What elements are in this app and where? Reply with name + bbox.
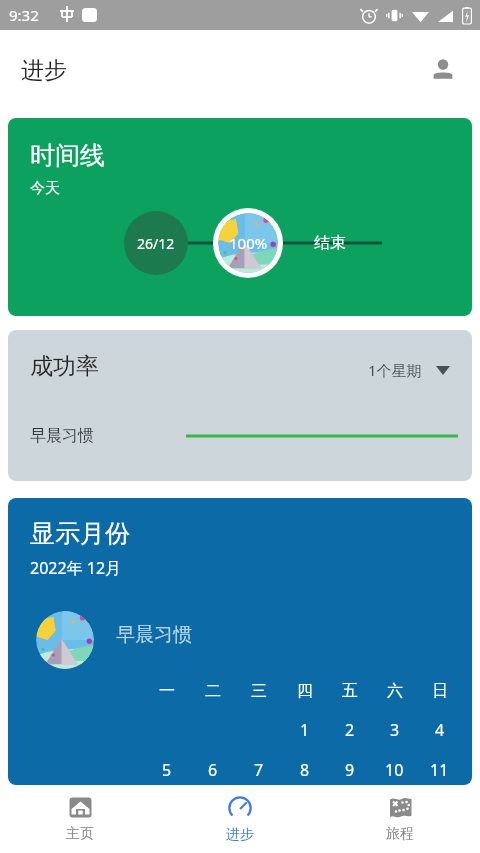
staticText: 三 [251,681,267,701]
staticText: 100% [229,233,268,253]
staticText: 早晨习惯 [116,623,192,647]
button[interactable]: 显示月份 [8,498,472,785]
staticText: 主页 [66,825,94,843]
staticText: 7 [254,759,264,781]
staticText: 6 [208,759,218,781]
staticText: 9 [345,759,355,781]
button[interactable]: 1个星期 [362,356,456,384]
staticText: 四 [297,681,313,701]
staticText: 六 [387,681,403,701]
staticText: 4 [435,719,445,741]
staticText: 26/12 [137,234,175,253]
staticText: 1个星期 [368,360,422,380]
button[interactable]: 时间线 [8,118,472,316]
staticText: 二 [205,681,221,701]
staticText: 旅程 [386,825,414,843]
staticText: 11 [430,759,449,781]
staticText: 日 [432,681,448,701]
staticText: 进步 [21,56,67,85]
staticText: 早晨习惯 [30,426,94,446]
button[interactable]: 成功率 [8,330,472,481]
staticText: 5 [162,759,172,781]
staticText: 3 [390,719,400,741]
staticText: 显示月份 [30,518,130,549]
button[interactable]: Account [420,47,466,93]
staticText: 今天 [30,179,60,198]
staticText: 时间线 [30,140,105,171]
staticText: 2022年 12月 [30,557,122,579]
staticText: 一 [159,681,175,701]
staticText: 进步 [226,826,254,844]
button[interactable]: 旅程 [320,789,480,849]
staticText: 8 [300,759,310,781]
staticText: 结束 [314,233,346,253]
staticText: 成功率 [30,352,99,381]
staticText: 10 [385,759,404,781]
staticText: 1 [300,719,310,741]
staticText: 2 [345,719,355,741]
button[interactable]: 主页 [0,789,160,849]
staticText: 9:32 [9,5,39,25]
staticText: 五 [342,681,358,701]
button[interactable]: 进步 [160,789,320,850]
